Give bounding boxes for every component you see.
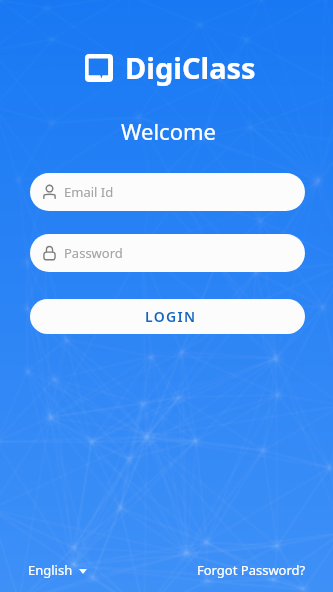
staticText: English — [28, 561, 73, 579]
staticText: LOGIN — [145, 307, 197, 326]
staticText: Welcome — [121, 116, 216, 146]
button[interactable]: Email Id — [30, 173, 305, 211]
staticText: Password — [64, 244, 123, 262]
button[interactable]: LOGIN — [30, 299, 305, 334]
staticText: Email Id — [64, 183, 114, 201]
button[interactable]: Forgot Password? — [191, 555, 312, 585]
other: Change language — [79, 569, 87, 574]
button[interactable]: Password — [30, 234, 305, 272]
staticText: DigiClass — [125, 48, 256, 87]
staticText: Forgot Password? — [197, 561, 306, 579]
button[interactable]: English — [22, 555, 93, 585]
other: DigiClass logo — [85, 54, 113, 82]
